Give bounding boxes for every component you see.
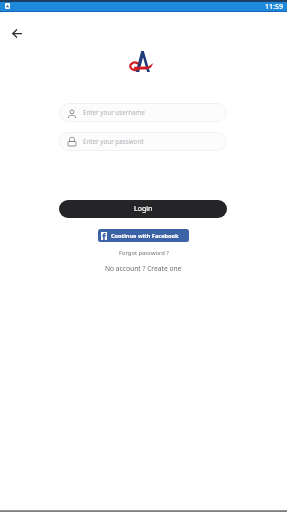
button[interactable]: Back [6,23,28,44]
staticText: 11:59 [265,2,283,12]
staticText: Enter your username [83,108,146,117]
button[interactable]: Continue with Facebook [98,229,189,242]
button[interactable]: Login [59,200,227,218]
button[interactable]: No account ? Create one [105,264,182,273]
button[interactable]: Forgot password ? [119,249,169,257]
button[interactable]: Enter your username [59,103,227,122]
staticText: Enter your password [83,137,144,146]
button[interactable]: Enter your password [59,132,227,151]
staticText: Continue with Facebook [111,232,179,240]
staticText: Login [134,204,153,214]
